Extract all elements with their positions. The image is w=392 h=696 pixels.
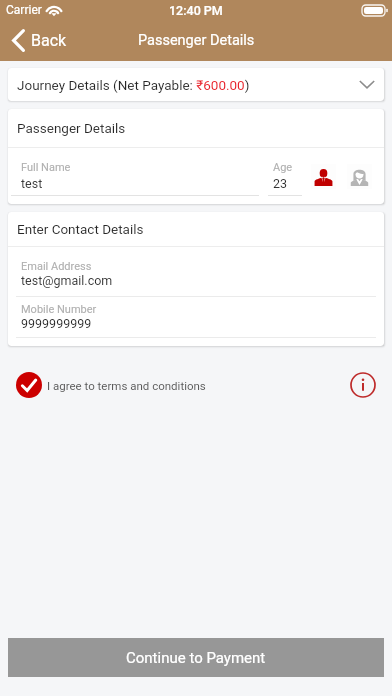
staticText: 9999999999 xyxy=(21,316,92,331)
button[interactable]: Information xyxy=(350,372,376,398)
button[interactable]: I agree to terms and conditions xyxy=(16,372,206,398)
staticText: test xyxy=(21,176,43,191)
button[interactable]: Male xyxy=(311,164,336,189)
button[interactable]: Continue to Payment xyxy=(8,638,384,677)
button[interactable]: Back xyxy=(0,25,77,56)
staticText: Full Name xyxy=(21,161,71,174)
staticText: Enter Contact Details xyxy=(17,221,144,237)
button[interactable]: Female xyxy=(347,164,372,189)
button[interactable]: Journey Details (Net Payable: ₹600.00) xyxy=(8,68,384,101)
staticText: Continue to Payment xyxy=(126,649,266,667)
staticText: Age xyxy=(273,161,293,174)
staticText: Journey Details (Net Payable: ₹600.00) xyxy=(17,77,250,93)
staticText: Mobile Number xyxy=(21,303,97,316)
staticText: 12:40 PM xyxy=(169,3,223,18)
staticText: I agree to terms and conditions xyxy=(47,379,206,392)
staticText: Back xyxy=(31,31,67,50)
staticText: Passenger Details xyxy=(17,120,126,136)
staticText: Passenger Details xyxy=(138,32,255,49)
staticText: Email Address xyxy=(21,260,92,273)
staticText: Carrier xyxy=(6,3,42,17)
staticText: 23 xyxy=(273,176,288,191)
staticText: test@gmail.com xyxy=(21,273,113,288)
